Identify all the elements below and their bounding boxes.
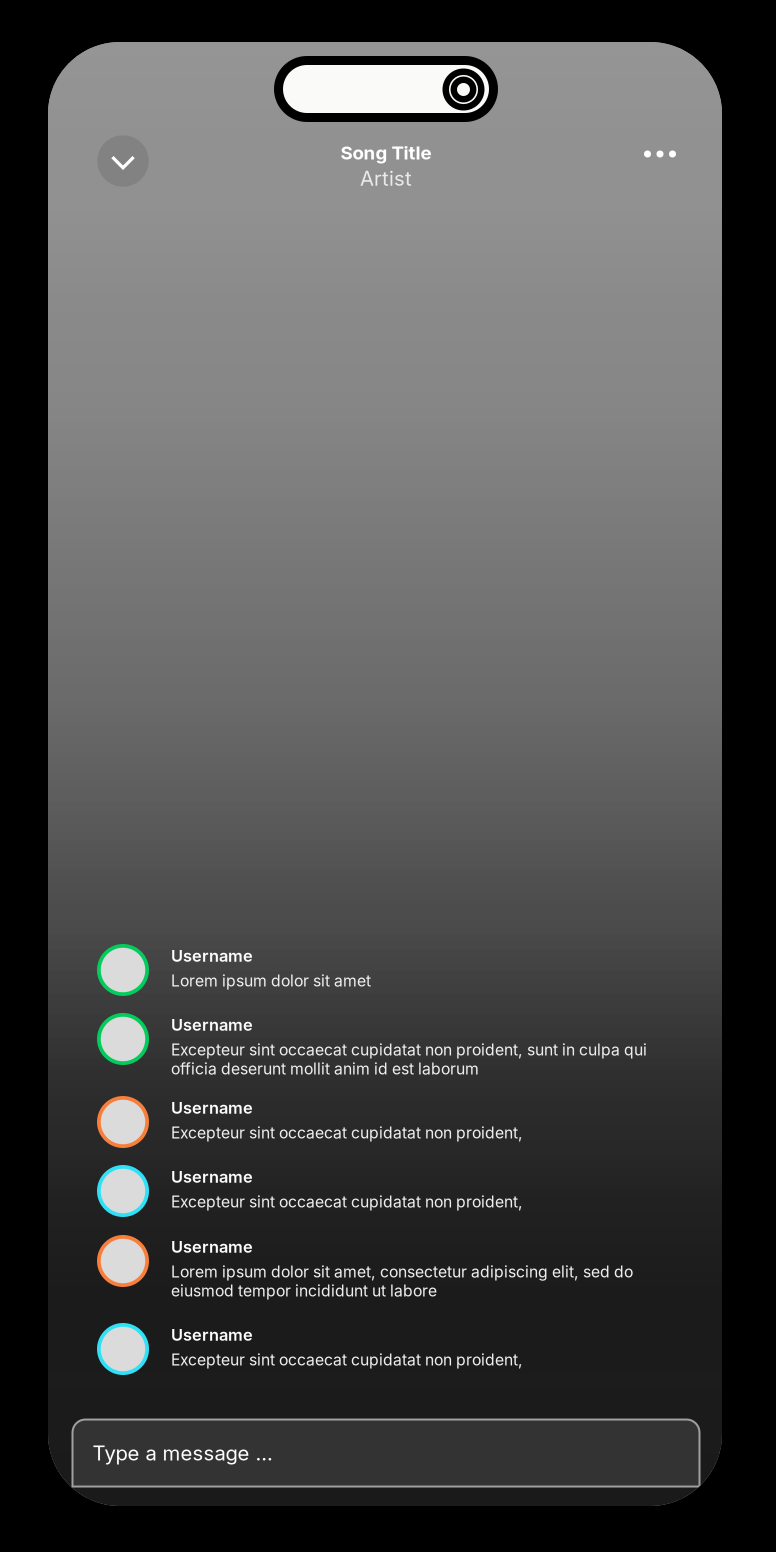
staticText: Username [171, 1325, 253, 1345]
staticText: Username [171, 1015, 253, 1035]
staticText: Type a message … [92, 1441, 272, 1465]
staticText: Song Title [340, 141, 431, 164]
staticText: Lorem ipsum dolor sit amet, consectetur … [171, 1262, 633, 1300]
staticText: Username [171, 946, 253, 966]
staticText: Username [171, 1237, 253, 1257]
button[interactable]: Type a message … [72, 1419, 699, 1486]
staticText: Username [171, 1098, 253, 1118]
staticText: Excepteur sint occaecat cupidatat non pr… [171, 1350, 523, 1369]
button[interactable]: More options [630, 130, 690, 178]
staticText: Username [171, 1167, 253, 1187]
staticText: Artist [360, 166, 412, 191]
staticText: Excepteur sint occaecat cupidatat non pr… [171, 1040, 647, 1078]
staticText: Excepteur sint occaecat cupidatat non pr… [171, 1123, 523, 1142]
staticText: Excepteur sint occaecat cupidatat non pr… [171, 1192, 523, 1211]
staticText: Lorem ipsum dolor sit amet [171, 971, 371, 990]
button[interactable]: Collapse now playing [97, 135, 149, 187]
